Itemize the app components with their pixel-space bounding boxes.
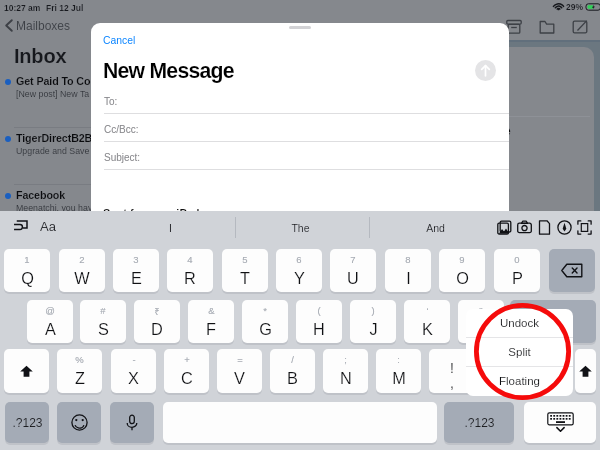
staticText: & xyxy=(208,305,215,316)
staticText: To: xyxy=(104,96,118,107)
staticText: U xyxy=(347,269,359,287)
staticText: ) xyxy=(371,305,375,316)
button[interactable]: Dictate xyxy=(110,402,154,443)
button[interactable]: Camera xyxy=(517,220,532,235)
staticText: E xyxy=(131,269,142,287)
staticText: ₹ xyxy=(154,305,160,318)
button[interactable]: .?123 xyxy=(5,402,49,443)
button[interactable]: + xyxy=(164,349,209,393)
staticText: 1 xyxy=(24,254,30,265)
staticText: ‘ xyxy=(426,305,429,316)
button[interactable]: / xyxy=(270,349,315,393)
staticText: % xyxy=(75,354,84,365)
staticText: .?123 xyxy=(12,416,43,429)
button[interactable]: ‘ xyxy=(404,300,450,343)
staticText: Fri 12 Jul xyxy=(46,3,84,12)
button[interactable]: Shift xyxy=(4,349,49,393)
button[interactable]: Cc/Bcc: xyxy=(91,114,509,142)
button[interactable]: Markup xyxy=(557,220,572,235)
button[interactable]: @ xyxy=(27,300,73,343)
staticText: 6 xyxy=(296,254,302,265)
button[interactable]: Return xyxy=(510,300,596,343)
button[interactable]: Hide keyboard xyxy=(524,402,596,443)
staticText: Meenatchi, you hav xyxy=(16,203,93,213)
button[interactable]: Move to folder xyxy=(539,19,555,35)
staticText: Floating xyxy=(499,375,540,388)
button[interactable]: Aa xyxy=(40,219,56,234)
staticText: R xyxy=(184,269,196,287)
button[interactable]: 3 xyxy=(113,249,159,292)
button[interactable]: Shift right xyxy=(575,349,596,393)
button[interactable]: 6 xyxy=(276,249,322,292)
button[interactable]: Mailboxes xyxy=(5,19,71,32)
staticText: 8 xyxy=(405,254,411,265)
staticText: Facebook xyxy=(16,189,66,201)
button[interactable]: Backspace xyxy=(549,249,595,292)
staticText: Get Paid To Com xyxy=(16,75,100,87)
button[interactable]: To: xyxy=(91,86,509,114)
button[interactable]: ( xyxy=(296,300,342,343)
button[interactable]: 9 xyxy=(439,249,485,292)
staticText: + xyxy=(184,354,190,365)
button[interactable]: Emoji xyxy=(57,402,101,443)
button[interactable]: Send xyxy=(475,60,496,81)
button[interactable]: ; xyxy=(323,349,368,393)
button[interactable]: * xyxy=(242,300,288,343)
button[interactable]: Cancel xyxy=(103,35,136,47)
staticText: ! xyxy=(450,360,454,376)
staticText: Z xyxy=(75,369,85,387)
button[interactable]: Document xyxy=(537,220,552,235)
button[interactable]: ₹ xyxy=(134,300,180,343)
staticText: C xyxy=(181,369,193,387)
staticText: 4 xyxy=(187,254,193,265)
staticText: 7 xyxy=(350,254,356,265)
button[interactable]: 1 xyxy=(4,249,50,292)
staticText: * xyxy=(263,305,267,316)
button[interactable]: & xyxy=(188,300,234,343)
button[interactable]: The xyxy=(260,211,340,244)
button[interactable]: Subject: xyxy=(91,142,509,170)
button[interactable]: ! xyxy=(429,349,474,393)
button[interactable]: " xyxy=(458,300,504,343)
button[interactable]: Compose xyxy=(572,19,588,35)
button[interactable]: # xyxy=(80,300,126,343)
button[interactable]: Floating xyxy=(466,367,573,395)
button[interactable]: - xyxy=(111,349,156,393)
staticText: I xyxy=(406,269,411,287)
button[interactable]: Archive xyxy=(506,19,522,35)
button[interactable]: 7 xyxy=(330,249,376,292)
button[interactable]: ) xyxy=(350,300,396,343)
staticText: [New post] New Ta xyxy=(16,89,90,99)
staticText: - xyxy=(132,354,136,365)
button[interactable]: Photos xyxy=(497,220,512,235)
button[interactable]: Undo xyxy=(14,220,28,234)
staticText: 0 xyxy=(514,254,520,265)
staticText: 10:27 am xyxy=(4,3,41,12)
button[interactable]: 4 xyxy=(167,249,213,292)
button[interactable]: : xyxy=(376,349,421,393)
staticText: .?123 xyxy=(464,416,495,429)
button[interactable]: Undock xyxy=(466,309,573,337)
button[interactable]: .?123 xyxy=(444,402,514,443)
button[interactable]: 8 xyxy=(385,249,431,292)
button[interactable]: And xyxy=(395,211,475,244)
button[interactable]: 2 xyxy=(59,249,105,292)
staticText: Cc/Bcc: xyxy=(104,124,139,135)
staticText: M xyxy=(392,369,406,387)
staticText: Subject: xyxy=(104,152,141,163)
button[interactable]: % xyxy=(57,349,102,393)
staticText: A xyxy=(45,320,56,338)
staticText: Split xyxy=(508,346,531,359)
button[interactable]: Facebook xyxy=(0,188,96,238)
button[interactable]: = xyxy=(217,349,262,393)
button[interactable]: Scan text xyxy=(577,220,592,235)
button[interactable]: Get Paid To Com xyxy=(0,74,96,124)
staticText: Aa xyxy=(40,219,56,234)
button[interactable]: 5 xyxy=(222,249,268,292)
staticText: Cancel xyxy=(103,35,136,47)
button[interactable]: TigerDirectB2B xyxy=(0,131,96,181)
button[interactable]: 0 xyxy=(494,249,540,292)
button[interactable]: I xyxy=(130,211,210,244)
button[interactable]: Split xyxy=(466,338,573,366)
